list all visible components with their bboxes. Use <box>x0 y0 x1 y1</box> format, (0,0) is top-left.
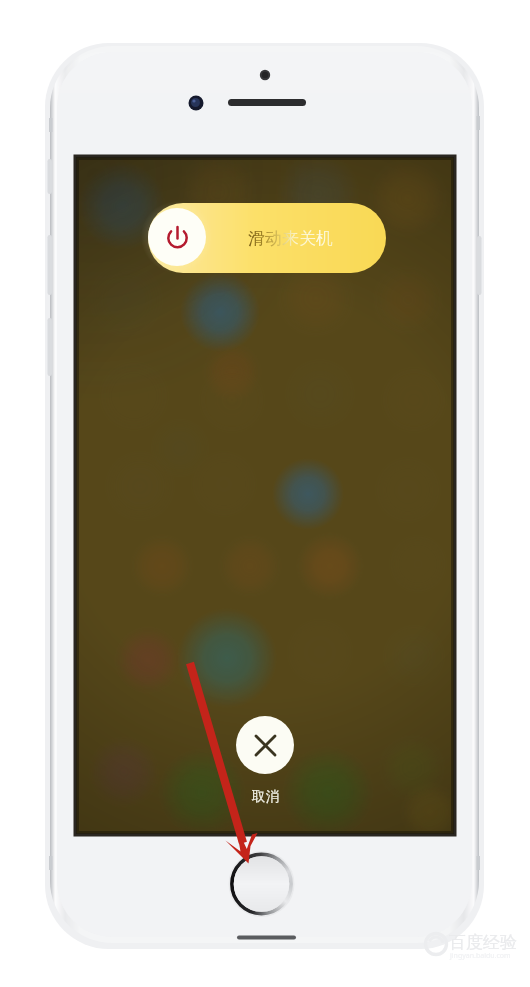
staticText: 滑动来关机 <box>248 228 333 249</box>
staticText: 取消 <box>252 788 279 805</box>
button[interactable]: Slide to power off <box>148 208 206 266</box>
staticText: 百度经验 <box>449 932 517 953</box>
button[interactable]: Cancel <box>236 716 294 774</box>
staticText: jingyan.baidu.com <box>450 951 511 961</box>
button[interactable]: 滑动来关机 <box>148 203 386 273</box>
